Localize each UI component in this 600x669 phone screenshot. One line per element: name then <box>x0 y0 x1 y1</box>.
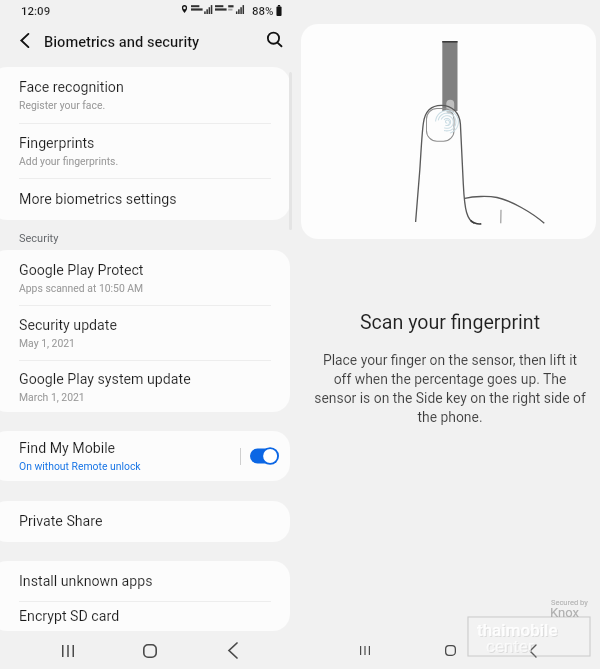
button[interactable]: Google Play system update <box>0 361 290 412</box>
button[interactable]: Private Share <box>0 501 290 542</box>
button[interactable]: Back <box>210 632 256 669</box>
staticText: center <box>487 637 535 657</box>
staticText: 12:09 <box>21 4 51 17</box>
staticText: Scan your fingerprint <box>300 311 600 334</box>
button[interactable]: Search <box>258 23 290 55</box>
staticText: Register your face. <box>19 99 106 111</box>
staticText: Place your finger on the sensor, then li… <box>314 352 586 425</box>
staticText: On without Remote unlock <box>19 460 141 472</box>
staticText: Google Play system update <box>19 371 191 388</box>
button[interactable]: Home <box>127 632 173 669</box>
staticText: Security update <box>19 317 117 334</box>
staticText: Biometrics and security <box>44 33 200 50</box>
button[interactable]: Back <box>510 632 556 669</box>
button[interactable]: Back <box>8 24 40 56</box>
button[interactable]: More biometrics settings <box>0 179 290 220</box>
button[interactable]: Encrypt SD card <box>0 602 290 631</box>
button[interactable]: Recent apps <box>342 632 388 669</box>
button[interactable]: Security update <box>0 306 290 360</box>
button[interactable]: Find My Mobile <box>0 431 290 481</box>
staticText: Google Play Protect <box>19 262 144 279</box>
staticText: Find My Mobile <box>19 440 116 457</box>
button[interactable]: Find My Mobile toggle <box>250 446 279 466</box>
staticText: Apps scanned at 10:50 AM <box>19 282 144 294</box>
staticText: Private Share <box>19 513 103 530</box>
staticText: Install unknown apps <box>19 573 153 590</box>
staticText: Secured by <box>551 598 588 607</box>
button[interactable]: Fingerprints <box>0 124 290 178</box>
staticText: Security <box>19 232 59 245</box>
staticText: March 1, 2021 <box>19 391 85 403</box>
staticText: 88% <box>252 4 274 17</box>
staticText: May 1, 2021 <box>19 337 75 349</box>
button[interactable]: Google Play Protect <box>0 250 290 305</box>
button[interactable]: Install unknown apps <box>0 561 290 601</box>
staticText: Fingerprints <box>19 135 95 152</box>
staticText: thaimobile <box>477 620 558 640</box>
staticText: Face recognition <box>19 79 124 96</box>
staticText: More biometrics settings <box>19 191 177 208</box>
button[interactable]: Home <box>427 632 473 669</box>
staticText: Knox <box>550 605 579 620</box>
button[interactable]: Face recognition <box>0 67 290 123</box>
button[interactable]: Recent apps <box>45 632 91 669</box>
staticText: Add your fingerprints. <box>19 155 119 167</box>
staticText: Encrypt SD card <box>19 608 120 625</box>
staticText: thaimobile <box>478 621 559 641</box>
staticText: center <box>486 636 534 656</box>
